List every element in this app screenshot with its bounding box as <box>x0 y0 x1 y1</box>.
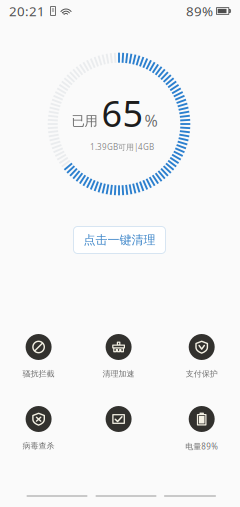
button[interactable]: 电量89% <box>165 406 239 452</box>
button[interactable]: 一键体检 <box>82 406 156 452</box>
staticText: 已用 <box>71 113 97 129</box>
button[interactable]: 病毒查杀 <box>2 406 76 452</box>
staticText: 电量89% <box>185 441 218 452</box>
staticText: 1.39GB可用|4GB <box>90 142 154 152</box>
button[interactable]: 骚扰拦截 <box>2 334 76 380</box>
button[interactable]: 清理加速 <box>82 334 156 380</box>
button[interactable]: 支付保护 <box>165 334 239 380</box>
staticText: 20:21 <box>9 2 45 20</box>
staticText: 病毒查杀 <box>23 441 55 451</box>
staticText: 骚扰拦截 <box>23 369 55 379</box>
staticText: 点击一键清理 <box>83 233 155 247</box>
staticText: 65 <box>101 89 143 137</box>
button[interactable]: 点击一键清理 <box>73 226 165 253</box>
staticText: % <box>144 110 157 131</box>
button[interactable]: Back <box>26 495 87 497</box>
staticText: 89% <box>186 2 213 20</box>
staticText: 清理加速 <box>103 369 135 379</box>
staticText: 支付保护 <box>186 369 218 379</box>
